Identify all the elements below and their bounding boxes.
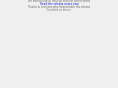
staticText: Thanks to everyone who helped make this … (0, 5, 118, 9)
staticText: Read the release notes now (40, 2, 79, 6)
button[interactable]: Read the release notes now (40, 2, 79, 6)
staticText: Get started now or catch up with the lat… (0, 0, 118, 3)
staticText: Installed on device (0, 8, 118, 12)
